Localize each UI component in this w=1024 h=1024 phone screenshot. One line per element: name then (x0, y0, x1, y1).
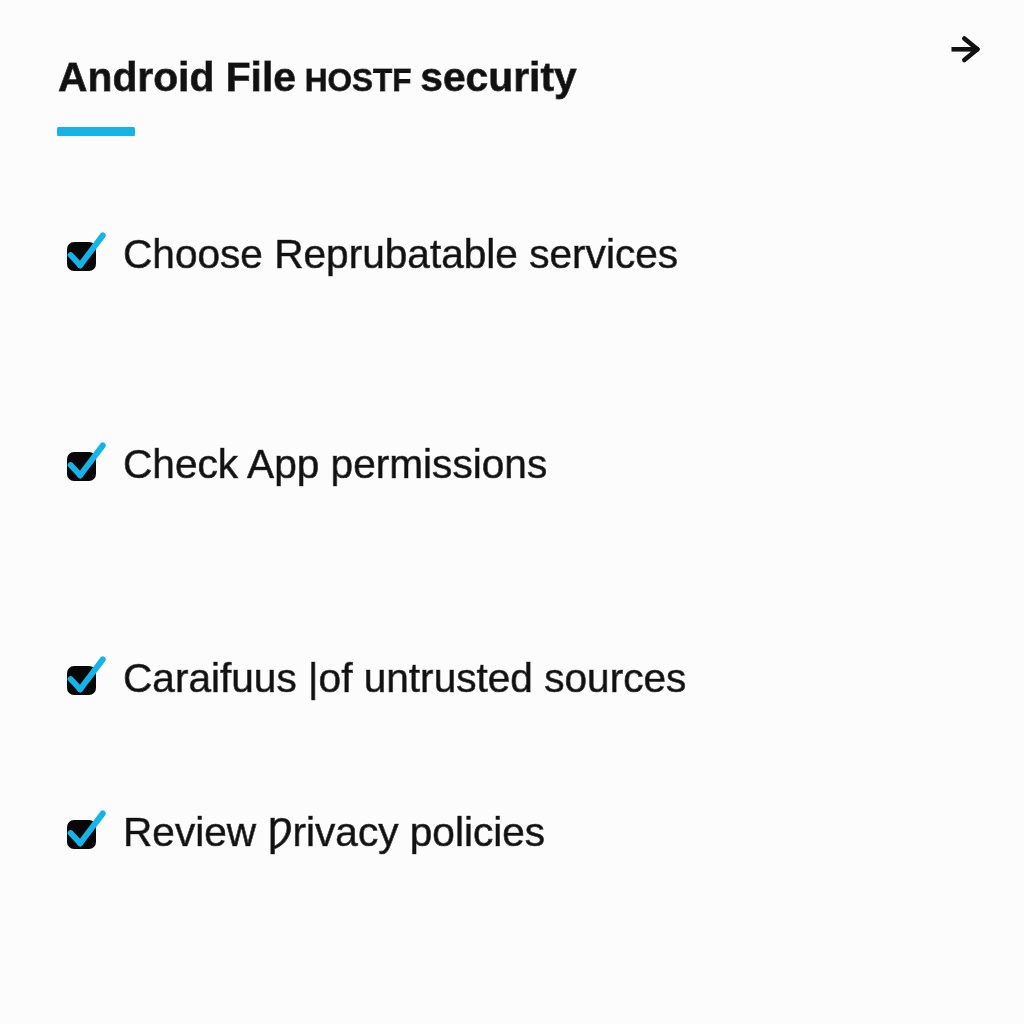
button[interactable]: Check App permissions (52, 433, 752, 499)
staticText: Check App permissions (123, 441, 548, 486)
staticText: Choose Reprubatable services (123, 231, 679, 276)
staticText: Android File HOSTF security (58, 54, 577, 100)
staticText: Check App permissions (123, 441, 548, 486)
staticText: Android File HOSTF security (58, 54, 577, 100)
staticText: Review Ƿrivacy policies (123, 809, 546, 854)
staticText: Review Ƿrivacy policies (123, 809, 546, 854)
staticText: Caraifuus |of untrusted sources (123, 655, 687, 700)
staticText: Caraifuus |of untrusted sources (123, 655, 687, 700)
button[interactable]: Next (935, 18, 993, 76)
button[interactable]: Caraifuus |of untrusted sources (52, 647, 752, 713)
staticText: Choose Reprubatable services (123, 231, 679, 276)
button[interactable]: Review Ƿrivacy policies (52, 801, 752, 867)
button[interactable]: Choose Reprubatable services (52, 223, 752, 289)
